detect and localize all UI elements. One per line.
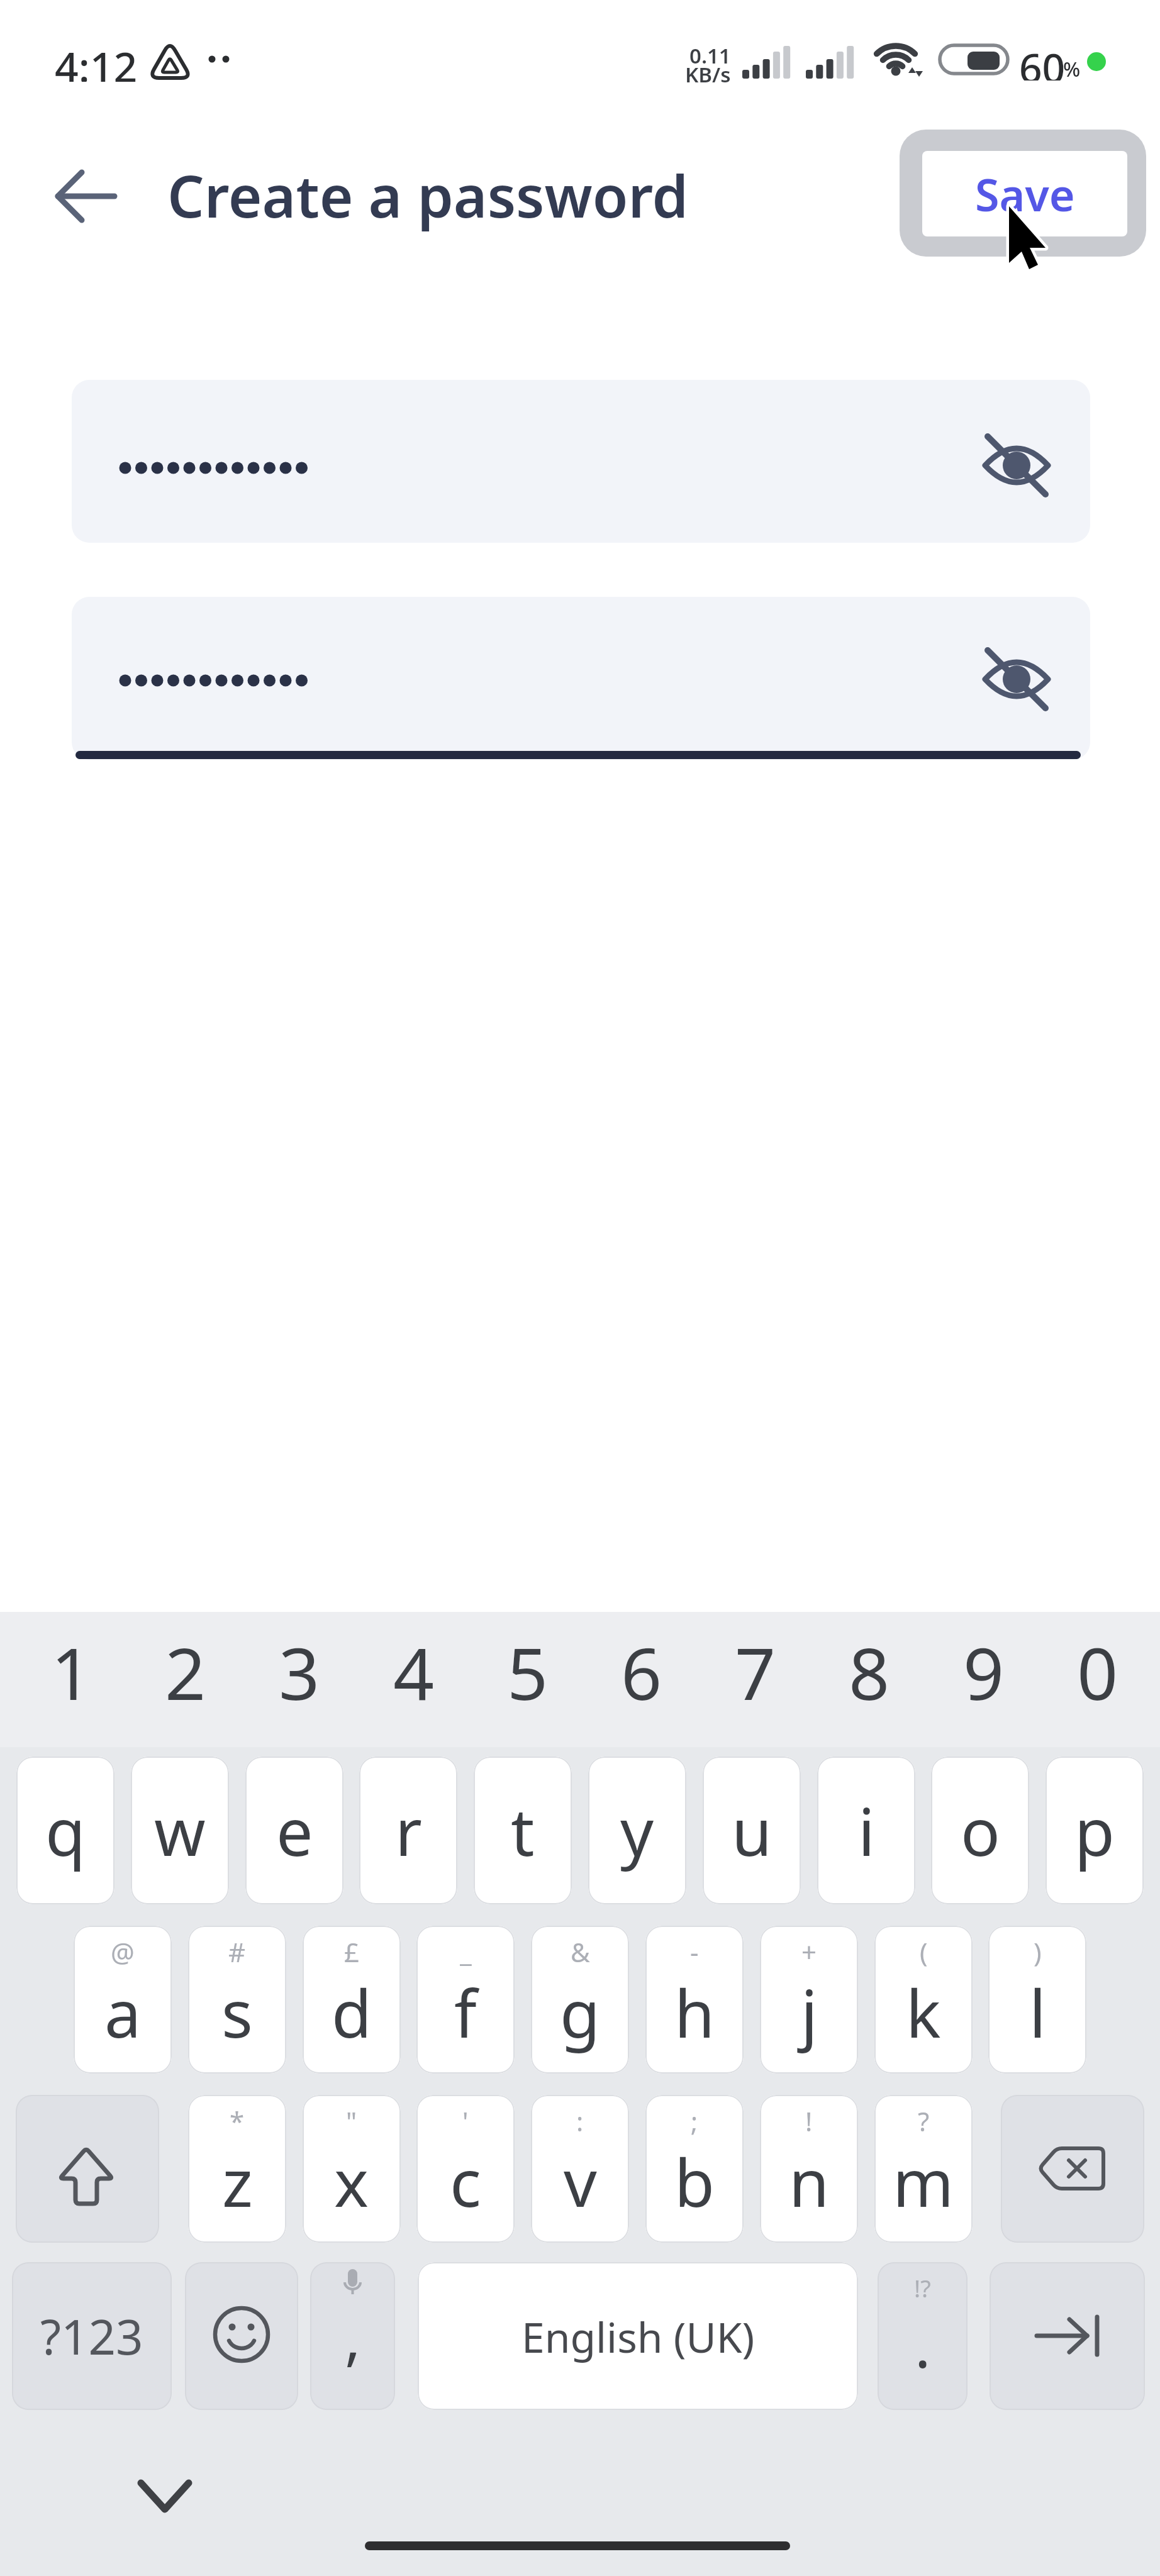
button[interactable]	[878, 2262, 968, 2410]
button[interactable]	[303, 1926, 401, 2074]
button[interactable]	[874, 1926, 973, 2074]
staticText: c	[450, 2137, 481, 2226]
staticText: *	[230, 2103, 245, 2136]
staticText: s	[221, 1968, 253, 2057]
button[interactable]: 9	[926, 1604, 1042, 1740]
staticText: w	[154, 1786, 206, 1875]
button[interactable]	[416, 2095, 515, 2243]
staticText: h	[674, 1968, 715, 2057]
staticText: 5	[507, 1623, 549, 1721]
staticText: a	[104, 1968, 142, 2057]
button[interactable]: o	[931, 1757, 1029, 1904]
staticText: 4	[393, 1623, 435, 1721]
button[interactable]	[645, 1926, 744, 2074]
staticText: d	[332, 1968, 372, 2057]
staticText: "	[346, 2103, 357, 2136]
button[interactable]	[416, 1926, 515, 2074]
button[interactable]	[531, 1926, 629, 2074]
button[interactable]: t	[474, 1757, 572, 1904]
staticText: Save	[975, 164, 1075, 224]
staticText: +	[801, 1934, 817, 1967]
button[interactable]: 1	[14, 1604, 130, 1740]
button[interactable]	[188, 2095, 286, 2243]
staticText: 8	[849, 1623, 890, 1721]
button[interactable]: r	[359, 1757, 457, 1904]
button[interactable]	[874, 2095, 973, 2243]
button[interactable]	[126, 2465, 204, 2534]
staticText: (	[920, 1934, 928, 1967]
staticText: English (UK)	[521, 2308, 755, 2365]
staticText: 4:12	[55, 38, 138, 82]
button[interactable]	[990, 2262, 1145, 2410]
button[interactable]: 0	[1040, 1604, 1156, 1740]
staticText: o	[961, 1786, 1000, 1875]
button[interactable]	[988, 1926, 1086, 2074]
button[interactable]	[760, 2095, 858, 2243]
staticText: ,	[345, 2296, 361, 2377]
button[interactable]	[760, 1926, 858, 2074]
staticText: i	[858, 1786, 875, 1875]
button[interactable]	[42, 164, 130, 233]
staticText: e	[276, 1786, 313, 1875]
button[interactable]: q	[16, 1757, 114, 1904]
staticText: z	[222, 2137, 253, 2226]
button[interactable]: 8	[811, 1604, 927, 1740]
staticText: k	[906, 1968, 941, 2057]
button[interactable]: Save	[922, 151, 1127, 236]
staticText: r	[395, 1786, 422, 1875]
button[interactable]	[969, 418, 1064, 513]
button[interactable]	[531, 2095, 629, 2243]
button[interactable]: 2	[128, 1604, 243, 1740]
staticText: )	[1034, 1934, 1042, 1967]
button[interactable]	[969, 631, 1064, 727]
staticText: ?	[918, 2103, 930, 2136]
button[interactable]	[185, 2262, 298, 2410]
button[interactable]: ?123	[12, 2262, 172, 2410]
staticText: 3	[279, 1623, 320, 1721]
staticText: g	[560, 1968, 600, 2057]
button[interactable]: y	[588, 1757, 686, 1904]
button[interactable]	[16, 2095, 159, 2243]
button[interactable]: 3	[242, 1604, 357, 1740]
button[interactable]	[72, 597, 1090, 760]
staticText: n	[789, 2137, 830, 2226]
button[interactable]: 5	[470, 1604, 586, 1740]
staticText: 1	[51, 1623, 92, 1721]
staticText: 60	[1019, 40, 1066, 80]
staticText: 6	[621, 1623, 662, 1721]
button[interactable]	[303, 2095, 401, 2243]
staticText: #	[228, 1934, 246, 1967]
staticText: !	[805, 2103, 813, 2136]
button[interactable]: ,	[310, 2262, 395, 2410]
button[interactable]: 6	[584, 1604, 700, 1740]
staticText: Create a password	[167, 156, 689, 235]
button[interactable]: 4	[356, 1604, 472, 1740]
staticText: ?123	[40, 2304, 143, 2369]
staticText: x	[334, 2137, 369, 2226]
staticText: v	[564, 2137, 597, 2226]
staticText: ;	[691, 2103, 698, 2136]
button[interactable]	[645, 2095, 744, 2243]
button[interactable]: i	[817, 1757, 915, 1904]
staticText: :	[576, 2103, 584, 2136]
staticText: !?	[914, 2272, 931, 2303]
button[interactable]: e	[245, 1757, 343, 1904]
staticText: q	[45, 1786, 86, 1875]
staticText: m	[893, 2137, 954, 2226]
button[interactable]: 7	[698, 1604, 813, 1740]
staticText: '	[462, 2103, 469, 2136]
staticText: KB/s	[685, 60, 731, 83]
button[interactable]	[74, 1926, 172, 2074]
button[interactable]: u	[703, 1757, 801, 1904]
button[interactable]	[1001, 2095, 1144, 2243]
staticText: &	[571, 1934, 590, 1967]
staticText: £	[344, 1934, 360, 1967]
button[interactable]	[72, 380, 1090, 543]
staticText: b	[674, 2137, 715, 2226]
staticText: _	[460, 1934, 472, 1967]
button[interactable]: w	[131, 1757, 229, 1904]
button[interactable]	[188, 1926, 286, 2074]
staticText: 9	[963, 1623, 1005, 1721]
button[interactable]: p	[1046, 1757, 1144, 1904]
button[interactable]: English (UK)	[418, 2262, 858, 2410]
